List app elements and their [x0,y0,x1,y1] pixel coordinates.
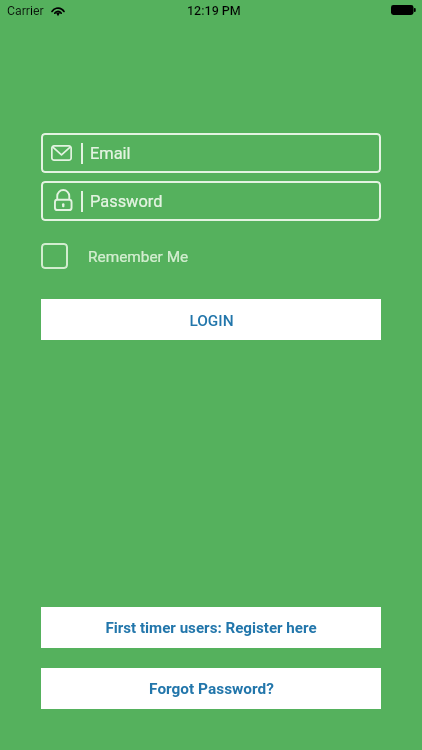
button[interactable]: Remember Me checkbox [41,242,189,269]
staticText: 12:19 PM [187,3,241,18]
other: Remember Me checkbox [41,243,68,269]
staticText: First timer users: Register here [105,619,317,637]
staticText: LOGIN [189,312,234,330]
staticText: Password [90,192,163,211]
staticText: Forgot Password? [149,680,274,698]
button[interactable]: Email [41,133,381,173]
button[interactable]: LOGIN [41,299,381,340]
button[interactable]: First timer users: Register here [41,607,381,648]
staticText: Remember Me [88,248,189,266]
button[interactable]: Forgot Password? [41,668,381,709]
staticText: Email [90,144,131,163]
button[interactable]: Password [41,181,381,221]
staticText: Carrier [7,4,44,18]
